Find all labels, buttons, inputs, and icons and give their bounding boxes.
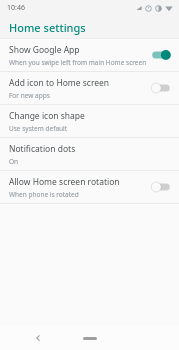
button[interactable]: Add icon to Home screen	[0, 72, 179, 104]
staticText: Show Google App	[9, 44, 80, 56]
button[interactable]: Home	[78, 332, 102, 344]
button[interactable]: Change icon shape	[0, 105, 179, 137]
staticText: On	[9, 157, 19, 166]
staticText: For new apps	[9, 91, 50, 100]
staticText: Use system default	[9, 124, 68, 133]
staticText: Add icon to Home screen	[9, 77, 110, 89]
staticText: When phone is rotated	[9, 190, 79, 199]
button[interactable]: Notification dots	[0, 138, 179, 170]
staticText: Change icon shape	[9, 110, 85, 122]
button[interactable]: Allow Home screen rotation	[0, 171, 179, 203]
staticText: Home settings	[9, 20, 86, 35]
staticText: When you swipe left from main Home scree…	[9, 58, 147, 67]
button[interactable]: Switch on	[150, 47, 172, 63]
staticText: Notification dots	[9, 143, 76, 155]
staticText: Allow Home screen rotation	[9, 176, 120, 188]
staticText: 10:46	[7, 3, 25, 13]
button[interactable]: Switch off	[150, 80, 172, 96]
button[interactable]: Show Google App	[0, 39, 179, 71]
button[interactable]: Switch off	[150, 179, 172, 195]
button[interactable]: Back	[30, 330, 46, 346]
